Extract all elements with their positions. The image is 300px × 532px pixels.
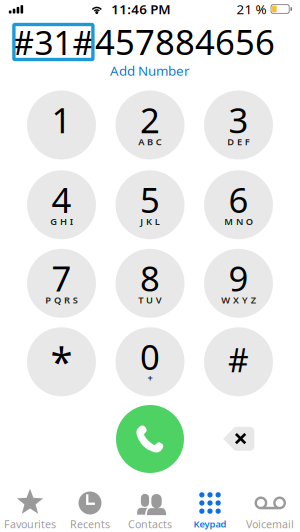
button[interactable]: 0: [115, 327, 184, 396]
button[interactable]: 4: [27, 170, 96, 239]
button[interactable]: #: [204, 327, 273, 396]
button[interactable]: Keypad: [180, 488, 240, 532]
staticText: O: [246, 215, 253, 228]
staticText: Keypad: [193, 518, 226, 530]
staticText: 6: [228, 176, 248, 222]
button[interactable]: Voicemail: [240, 488, 300, 532]
button[interactable]: Contacts: [120, 488, 180, 532]
button[interactable]: Add Number: [90, 62, 210, 78]
staticText: #: [228, 339, 249, 381]
staticText: M: [224, 215, 233, 228]
staticText: Favourites: [4, 517, 56, 531]
staticText: 0: [140, 333, 160, 379]
staticText: L: [155, 215, 160, 228]
staticText: Voicemail: [246, 517, 294, 531]
staticText: C: [156, 135, 162, 148]
staticText: 4: [51, 176, 71, 222]
staticText: 457884656: [95, 18, 275, 64]
button[interactable]: Favourites: [0, 488, 60, 532]
staticText: E: [237, 135, 242, 148]
button[interactable]: Call: [116, 405, 184, 473]
staticText: V: [156, 294, 162, 306]
staticText: P: [45, 294, 51, 306]
button[interactable]: 9: [204, 249, 273, 318]
staticText: T: [138, 294, 143, 306]
staticText: Contacts: [128, 517, 172, 531]
staticText: 8: [140, 255, 160, 301]
button[interactable]: 6: [204, 170, 273, 239]
staticText: S: [73, 294, 78, 306]
staticText: N: [236, 215, 243, 228]
staticText: X: [233, 294, 239, 306]
staticText: Z: [251, 294, 256, 306]
staticText: D: [227, 135, 234, 148]
staticText: 1: [51, 97, 71, 143]
button[interactable]: 8: [115, 249, 184, 318]
staticText: J: [140, 215, 143, 228]
staticText: F: [245, 135, 250, 148]
staticText: 2: [140, 97, 160, 143]
button[interactable]: Recents: [60, 488, 120, 532]
staticText: Q: [54, 294, 61, 306]
staticText: 9: [228, 255, 248, 301]
staticText: 7: [51, 255, 71, 301]
staticText: G: [50, 215, 57, 228]
staticText: +: [147, 372, 152, 384]
button[interactable]: 7: [27, 249, 96, 318]
staticText: R: [64, 294, 70, 306]
staticText: 21 %: [237, 0, 267, 18]
staticText: #31#: [12, 20, 94, 64]
button[interactable]: 1: [27, 90, 96, 159]
button[interactable]: 3: [204, 90, 273, 159]
staticText: Add Number: [110, 62, 190, 79]
staticText: 5: [140, 176, 160, 222]
staticText: K: [146, 215, 152, 228]
staticText: *: [50, 334, 72, 387]
staticText: I: [70, 215, 73, 228]
staticText: Y: [242, 294, 248, 306]
staticText: 11:46 PM: [111, 0, 170, 18]
staticText: W: [221, 294, 230, 306]
staticText: A: [138, 135, 144, 148]
button[interactable]: 5: [115, 170, 184, 239]
button[interactable]: Delete: [214, 419, 262, 459]
staticText: 3: [228, 97, 248, 143]
button[interactable]: *: [27, 327, 96, 396]
staticText: B: [147, 135, 153, 148]
staticText: U: [146, 294, 153, 306]
button[interactable]: 2: [115, 90, 184, 159]
staticText: Recents: [70, 517, 110, 531]
staticText: H: [60, 215, 67, 228]
